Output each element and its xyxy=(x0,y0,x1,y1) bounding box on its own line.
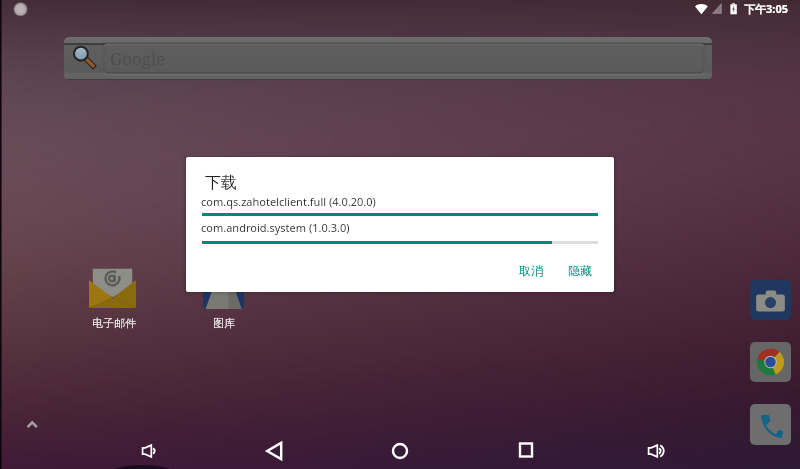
staticText: 下午3:05 xyxy=(744,1,788,16)
button[interactable]: Camera xyxy=(750,280,791,320)
button[interactable]: 取消 xyxy=(519,263,543,278)
staticText: Google xyxy=(110,47,166,70)
button[interactable]: Google xyxy=(64,37,712,80)
button[interactable]: 图库 xyxy=(194,266,254,330)
staticText: com.android.system (1.0.3.0) xyxy=(201,220,350,235)
button[interactable]: Chrome xyxy=(750,342,791,382)
staticText: com.qs.zahotelclient.full (4.0.20.0) xyxy=(201,194,376,209)
staticText: 电子邮件 xyxy=(84,316,144,330)
button[interactable]: 隐藏 xyxy=(568,263,592,278)
button[interactable]: Recents xyxy=(502,426,550,469)
staticText: 下载 xyxy=(205,173,237,193)
button[interactable]: Back xyxy=(250,427,298,469)
button[interactable]: Phone xyxy=(750,404,791,445)
staticText: 取消 xyxy=(519,263,543,278)
staticText: 图库 xyxy=(194,316,254,330)
button[interactable]: Volume up xyxy=(630,427,678,469)
button[interactable]: Home xyxy=(376,427,424,469)
button[interactable]: 电子邮件 xyxy=(84,266,144,330)
button[interactable]: Open app drawer xyxy=(24,418,40,434)
button[interactable]: Volume down xyxy=(124,427,172,469)
staticText: 隐藏 xyxy=(568,263,592,278)
